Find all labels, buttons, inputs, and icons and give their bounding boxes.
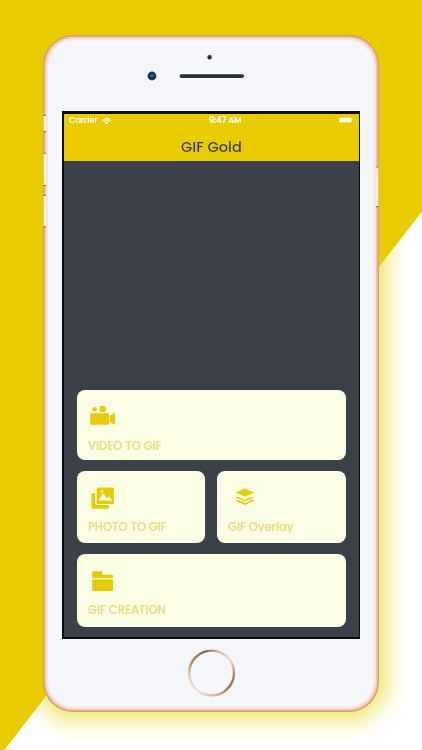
staticText: PHOTO TO GIF (88, 519, 167, 533)
button[interactable]: GIF Creation (77, 554, 346, 627)
staticText: GIF CREATION (88, 602, 166, 617)
staticText: GIF Gold (181, 137, 242, 157)
staticText: Carrier (69, 114, 98, 126)
staticText: VIDEO TO GIF (88, 438, 162, 450)
button[interactable]: Photo to GIF (77, 471, 205, 543)
staticText: GIF Overlay (228, 519, 294, 533)
staticText: 9:47 AM (209, 114, 242, 126)
button[interactable]: Video to GIF (77, 390, 346, 460)
button[interactable]: GIF Overlay (217, 471, 346, 543)
